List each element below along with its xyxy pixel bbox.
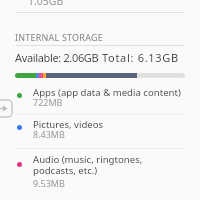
staticText: Pictures, videos (33, 118, 104, 131)
staticText: Total: 6.13GB (102, 50, 179, 65)
staticText: 1.05GB (28, 0, 64, 8)
staticText: Apps (app data & media content) (33, 86, 181, 99)
staticText: 722MB (33, 96, 63, 108)
staticText: INTERNAL STORAGE (15, 31, 103, 43)
staticText: 8.43MB (33, 128, 65, 140)
staticText: Available: 2.06GB (15, 50, 99, 65)
staticText: Audio (music, ringtones, (33, 153, 143, 166)
button[interactable]: Pictures, videos (0, 115, 200, 145)
staticText: 9.53MB (33, 177, 65, 189)
staticText: podcasts, etc.) (33, 164, 98, 177)
button[interactable] (0, 150, 200, 188)
button[interactable]: Apps (app data & media content) (0, 83, 200, 113)
